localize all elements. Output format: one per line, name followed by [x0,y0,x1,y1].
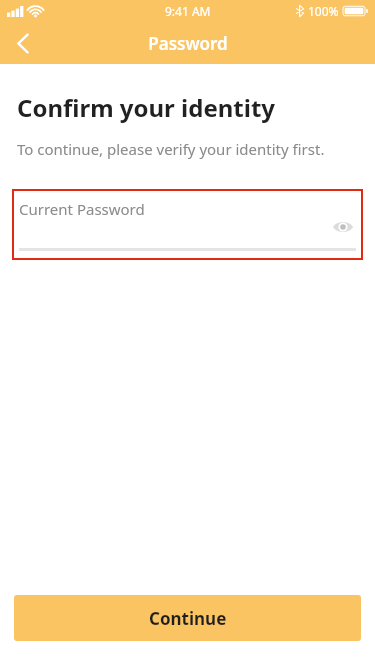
button[interactable]: Continue [14,595,361,641]
staticText: Password [148,32,228,55]
button[interactable]: Show password [327,215,359,239]
staticText: Current Password [19,199,145,219]
staticText: 9:41 AM [165,3,211,19]
button[interactable]: Back [0,22,46,64]
button[interactable]: Current Password [12,189,363,260]
staticText: 100% [308,3,339,19]
staticText: To continue, please verify your identity… [17,139,325,159]
staticText: Confirm your identity [17,91,276,124]
staticText: Continue [149,607,227,630]
